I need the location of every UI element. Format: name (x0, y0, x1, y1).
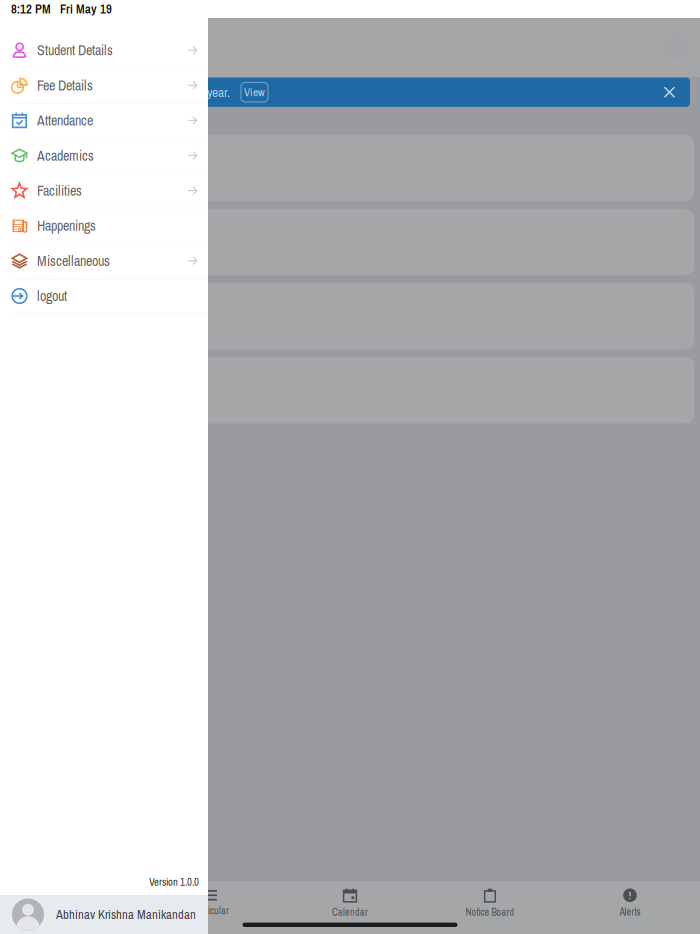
staticText: Miscellaneous (37, 251, 110, 270)
staticText: Fee Details (37, 76, 93, 95)
staticText: Alerts (619, 905, 640, 919)
button[interactable]: Student Details (0, 33, 208, 67)
staticText: Happenings (37, 216, 96, 235)
staticText: Notice Board (465, 905, 514, 919)
button[interactable]: Calendar (280, 883, 420, 920)
button[interactable]: Fee Details (0, 68, 208, 102)
staticText: Student Details (37, 41, 113, 60)
button[interactable]: Attendance (0, 103, 208, 138)
staticText: 8:12 PM (11, 0, 51, 18)
staticText: Fri May 19 (60, 0, 112, 18)
button[interactable]: Happenings (0, 209, 208, 243)
staticText: Fee has not been paid for the academic y… (14, 83, 230, 101)
button[interactable]: Miscellaneous (0, 244, 208, 278)
staticText: Facilities (37, 181, 82, 200)
staticText: Curricular (191, 904, 229, 917)
button[interactable]: View (241, 82, 268, 102)
button[interactable]: Notice Board (420, 883, 560, 920)
button[interactable]: Dismiss banner (655, 78, 684, 107)
button[interactable]: Curricular (140, 885, 280, 918)
button[interactable]: logout (0, 279, 208, 313)
staticText: logout (37, 287, 67, 305)
staticText: Calendar (332, 905, 368, 919)
staticText: Abhinav Krishna Manikandan (56, 906, 196, 923)
button[interactable]: Facilities (0, 174, 208, 208)
button[interactable]: Alerts (560, 883, 700, 920)
button[interactable]: Abhinav Krishna Manikandan (0, 895, 208, 934)
button[interactable]: Academics (0, 138, 208, 173)
staticText: Attendance (37, 111, 93, 130)
staticText: View (244, 85, 265, 100)
staticText: Academics (37, 146, 94, 165)
staticText: Version 1.0.0 (149, 875, 199, 889)
